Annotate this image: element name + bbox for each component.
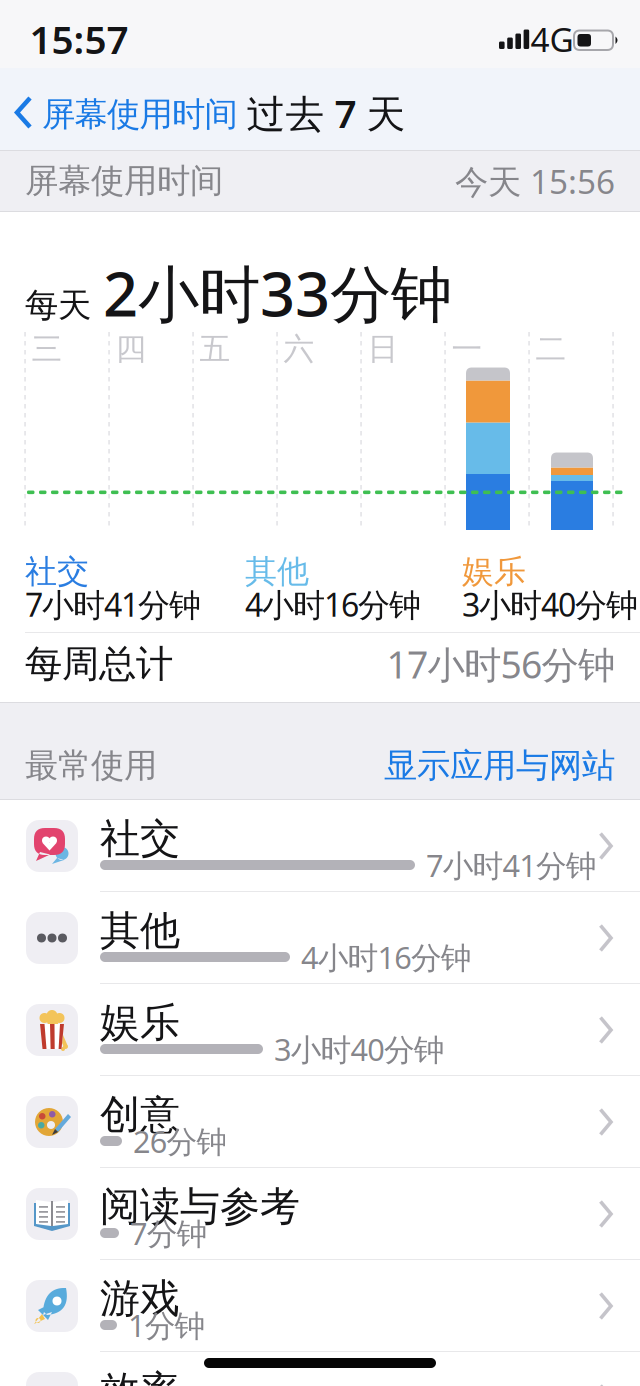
staticText: 15:57	[29, 13, 128, 65]
staticText: 最常使用	[25, 745, 157, 786]
staticText: 屏幕使用时间	[42, 94, 237, 135]
staticText: 社交	[100, 814, 180, 863]
staticText: 26分钟	[133, 1121, 227, 1161]
staticText: 1分钟	[128, 1305, 206, 1345]
button[interactable]: 游戏	[0, 1260, 640, 1352]
staticText: 其他	[245, 552, 309, 591]
staticText: 4小时16分钟	[301, 937, 472, 977]
staticText: 7小时41分钟	[426, 845, 597, 885]
button[interactable]: 效率	[0, 1352, 640, 1386]
button[interactable]: 娱乐	[0, 984, 640, 1076]
staticText: 娱乐	[462, 552, 526, 591]
staticText: 三	[31, 330, 62, 368]
staticText: 创意	[100, 1090, 180, 1139]
staticText: 社交	[25, 552, 89, 591]
staticText: 4小时16分钟	[245, 583, 421, 625]
staticText: 二	[535, 330, 566, 368]
button[interactable]: 阅读与参考	[0, 1168, 640, 1260]
staticText: 阅读与参考	[100, 1182, 300, 1231]
staticText: 每周总计	[25, 641, 173, 687]
staticText: 游戏	[100, 1274, 180, 1323]
staticText: 五	[199, 330, 230, 368]
button[interactable]: 创意	[0, 1076, 640, 1168]
staticText: 屏幕使用时间	[25, 160, 223, 201]
staticText: 每天	[25, 285, 91, 326]
staticText: 一	[451, 330, 482, 368]
staticText: 日	[367, 330, 398, 368]
staticText: 其他	[100, 906, 180, 955]
button[interactable]: 显示应用与网站	[384, 745, 615, 786]
staticText: 效率	[100, 1366, 180, 1386]
staticText: 四	[115, 330, 146, 368]
staticText: 2小时33分钟	[103, 252, 452, 333]
staticText: 过去 7 天	[246, 87, 405, 139]
staticText: 今天 15:56	[455, 159, 615, 203]
staticText: 17小时56分钟	[386, 639, 615, 689]
staticText: 4G	[530, 17, 573, 61]
staticText: 3小时40分钟	[462, 583, 638, 625]
staticText: 7分钟	[130, 1213, 208, 1253]
staticText: 娱乐	[100, 998, 180, 1047]
staticText: 3小时40分钟	[274, 1029, 445, 1069]
button[interactable]: 社交	[0, 800, 640, 892]
staticText: 六	[283, 330, 314, 368]
button[interactable]: 其他	[0, 892, 640, 984]
staticText: 显示应用与网站	[384, 745, 615, 786]
staticText: 7小时41分钟	[25, 583, 201, 625]
button[interactable]: 返回 屏幕使用时间	[0, 68, 250, 150]
